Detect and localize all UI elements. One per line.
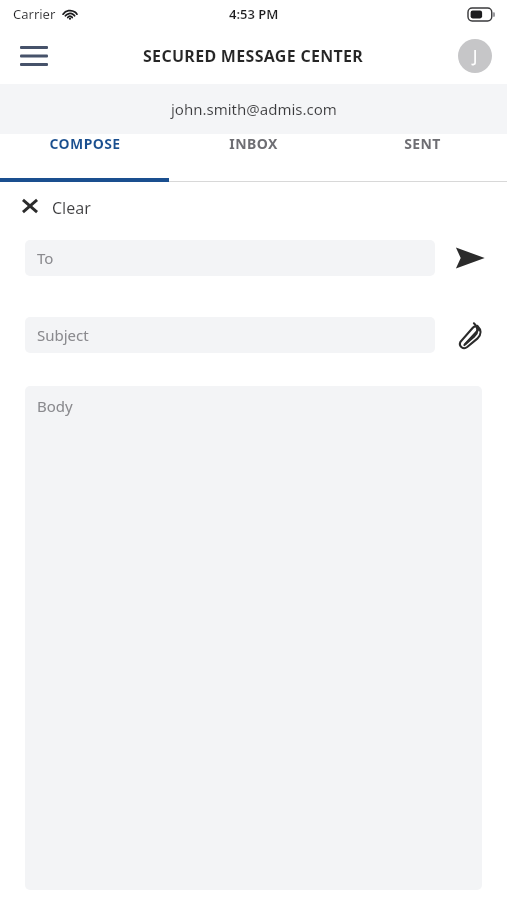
button[interactable]: INBOX [169,134,338,153]
button[interactable]: COMPOSE [0,134,169,153]
button[interactable]: Clear [18,190,91,226]
button[interactable]: Attach file [447,312,493,358]
staticText: To [37,248,54,268]
staticText: john.smith@admis.com [171,99,337,119]
button[interactable]: To [25,240,435,276]
staticText: Carrier [13,5,56,23]
button[interactable]: Subject [25,317,435,353]
staticText: Subject [37,325,89,345]
button[interactable]: SENT [338,134,507,153]
button[interactable]: Send [447,235,493,281]
staticText: COMPOSE [49,134,121,153]
staticText: SENT [404,134,441,153]
staticText: J [473,45,478,67]
staticText: Body [37,396,73,416]
staticText: Clear [52,197,91,219]
button[interactable]: Profile [453,34,497,78]
staticText: INBOX [229,134,278,153]
button[interactable]: Menu [10,32,58,80]
staticText: 4:53 PM [229,5,279,23]
staticText: SECURED MESSAGE CENTER [143,45,364,67]
